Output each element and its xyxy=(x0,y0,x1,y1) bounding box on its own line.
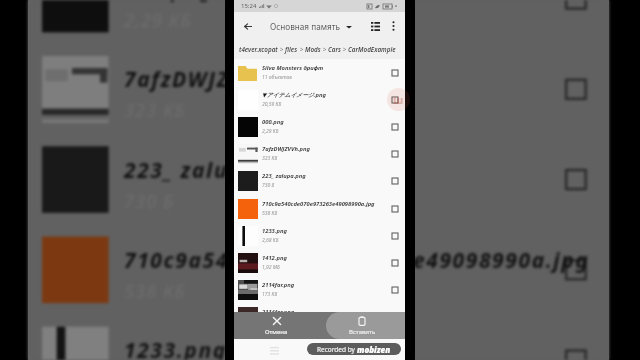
button[interactable]: 000.png xyxy=(234,113,405,140)
button[interactable]: Menu xyxy=(266,343,282,357)
staticText: 11 объектов xyxy=(262,74,292,81)
button[interactable]: 7afzDWJZVVh.png xyxy=(234,140,405,167)
staticText: 2,68 КБ xyxy=(262,237,279,244)
button[interactable]: Отмена xyxy=(234,312,319,339)
staticText: mobizen xyxy=(357,344,391,355)
staticText: 1412.png xyxy=(262,254,287,262)
button[interactable]: 223_ zalupa.png xyxy=(234,167,405,194)
staticText: 223_ zalupa.png xyxy=(262,172,306,180)
staticText: 000.png xyxy=(124,0,214,4)
staticText: 1233.png xyxy=(124,336,227,360)
staticText: 7afzDWJZVVh.png xyxy=(262,145,311,153)
staticText: > xyxy=(278,45,285,54)
button[interactable]: More options xyxy=(385,12,402,40)
staticText: 323 КБ xyxy=(262,155,278,162)
staticText: 1,92 МБ xyxy=(262,264,280,271)
staticText: Recorded by xyxy=(317,345,357,354)
button[interactable]: Silva Monsters дрифт xyxy=(234,59,405,86)
staticText: > xyxy=(298,45,305,54)
staticText: 1233.png xyxy=(262,227,287,235)
staticText: 710c9a540cde070e973263e49098990a.jpg xyxy=(124,246,590,275)
staticText: > xyxy=(321,45,328,54)
button[interactable]: Select file xyxy=(388,283,402,297)
staticText: ▼アイテムイメージ.png xyxy=(262,91,326,99)
staticText: Основная память xyxy=(270,21,341,32)
staticText: ш xyxy=(393,92,404,107)
button[interactable]: Основная память xyxy=(270,17,352,36)
button[interactable]: Select file xyxy=(388,256,402,270)
button[interactable]: Вставить xyxy=(319,312,405,339)
staticText: > xyxy=(341,45,348,54)
button[interactable]: Select file xyxy=(388,202,402,216)
button[interactable]: t4ever.xcopat xyxy=(239,45,278,54)
button[interactable]: 2114far.png xyxy=(234,303,405,330)
button[interactable]: CarModExample xyxy=(348,45,396,54)
staticText: Вставить xyxy=(349,328,376,336)
button[interactable]: 1233.png xyxy=(234,222,405,249)
staticText: Отмена xyxy=(265,328,288,336)
staticText: 173 КБ xyxy=(262,291,278,298)
button[interactable]: Select file xyxy=(388,147,402,161)
button[interactable]: 2114far.png xyxy=(234,276,405,303)
staticText: 2,29 КБ xyxy=(262,128,279,135)
staticText: 2114far.png xyxy=(262,308,295,316)
staticText: 7afzDWJZVVh.png xyxy=(124,65,322,94)
button[interactable]: Select file xyxy=(388,174,402,188)
button[interactable]: Select file xyxy=(388,93,402,107)
staticText: 20,59 КБ xyxy=(262,101,282,108)
staticText: 710c9a540cde070e973263e49098990a.jpg xyxy=(262,200,375,208)
button[interactable]: Select file xyxy=(388,66,402,80)
button[interactable]: Select file xyxy=(388,120,402,134)
button[interactable]: Select file xyxy=(388,310,402,324)
staticText: 000.png xyxy=(262,118,284,126)
button[interactable]: 710c9a540cde070e973263e49098990a.jpg xyxy=(234,195,405,222)
button[interactable]: Select file xyxy=(388,229,402,243)
button[interactable]: 1412.png xyxy=(234,249,405,276)
button[interactable]: Cars xyxy=(328,45,341,54)
button[interactable]: ▼アイテムイメージ.png xyxy=(234,86,405,113)
staticText: 223_ zalupa.png xyxy=(124,156,307,185)
staticText: Silva Monsters дрифт xyxy=(262,64,324,72)
staticText: 15:24 xyxy=(241,2,257,10)
staticText: 538 КБ xyxy=(262,210,278,217)
button[interactable]: View mode xyxy=(365,12,385,40)
button[interactable]: Back xyxy=(234,12,262,40)
button[interactable]: files xyxy=(285,45,298,54)
staticText: 730 Б xyxy=(262,182,275,189)
button[interactable]: Mods xyxy=(305,45,321,54)
staticText: 2114far.png xyxy=(262,281,295,289)
staticText: 173 КБ xyxy=(262,318,278,325)
